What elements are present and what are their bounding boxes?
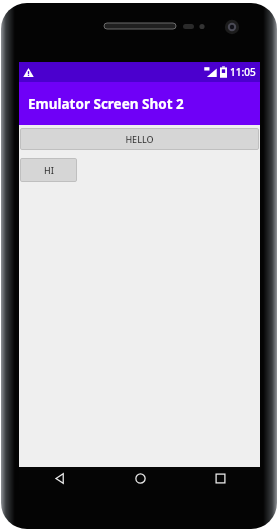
staticText: HI bbox=[44, 164, 54, 176]
button[interactable]: Recent apps bbox=[180, 467, 260, 490]
button[interactable]: Back bbox=[19, 467, 100, 490]
staticText: Emulator Screen Shot 2 bbox=[28, 95, 184, 113]
button[interactable]: HELLO bbox=[20, 128, 259, 150]
staticText: HELLO bbox=[125, 133, 154, 145]
button[interactable]: Home bbox=[100, 467, 180, 490]
staticText: 11:05 bbox=[230, 65, 256, 79]
button[interactable]: HI bbox=[20, 158, 77, 182]
